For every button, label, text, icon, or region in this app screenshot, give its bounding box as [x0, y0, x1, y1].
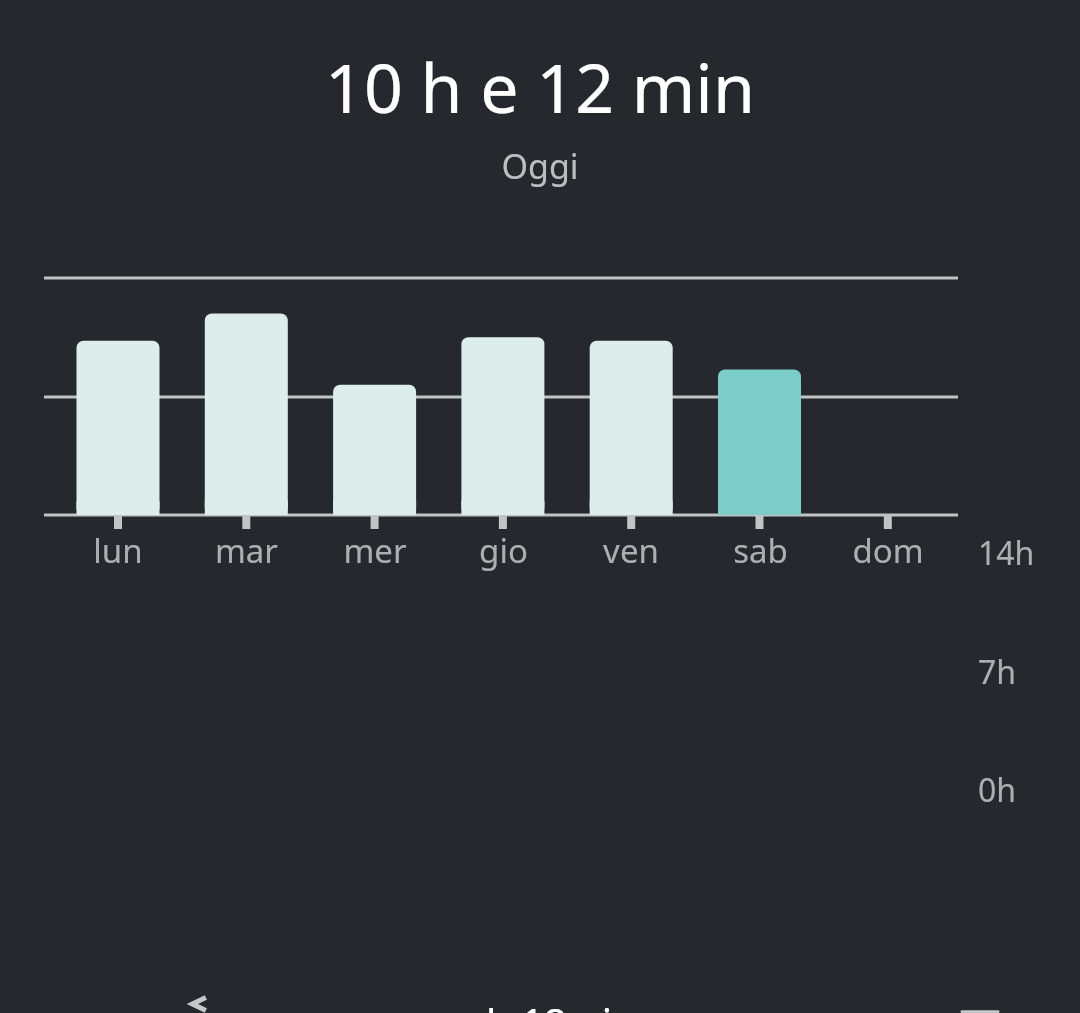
staticText: gio [479, 528, 528, 573]
staticText: 14h [978, 531, 1035, 575]
staticText: 10 h e 12 min [0, 40, 1080, 133]
staticText: ven [603, 528, 659, 573]
staticText: Oggi [0, 143, 1080, 189]
staticText: lun [93, 528, 143, 573]
button[interactable]: Giorno precedente [166, 995, 230, 1013]
staticText: dom [852, 528, 924, 573]
staticText: 0h [978, 768, 1017, 812]
staticText: 7h [978, 650, 1017, 694]
staticText: sab 18 giu [444, 995, 637, 1013]
staticText: mer [343, 528, 407, 573]
staticText: mar [215, 528, 278, 573]
staticText: sab [733, 528, 788, 573]
